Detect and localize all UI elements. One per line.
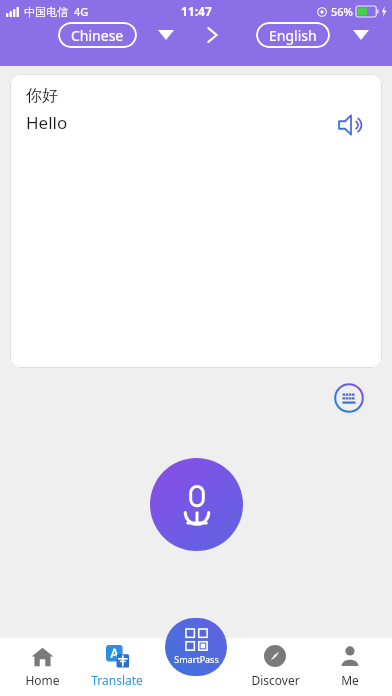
staticText: 4G <box>74 4 89 19</box>
button[interactable]: Swap languages <box>199 22 225 48</box>
button[interactable]: Choose language <box>348 22 374 48</box>
button[interactable]: Home <box>10 638 74 688</box>
staticText: Me <box>341 672 359 688</box>
button[interactable]: Chinese <box>58 22 137 48</box>
button[interactable]: Start voice recording <box>150 458 243 551</box>
button[interactable]: SmartPass <box>165 618 227 676</box>
button[interactable]: Keyboard input <box>332 381 366 415</box>
staticText: Translate <box>91 672 143 688</box>
button[interactable]: Discover <box>243 638 307 688</box>
staticText: 11:47 <box>181 3 212 19</box>
staticText: SmartPass <box>174 653 219 665</box>
staticText: 56% <box>331 4 353 19</box>
staticText: Chinese <box>71 26 124 45</box>
staticText: 你好 <box>26 86 58 106</box>
button[interactable]: English <box>256 22 330 48</box>
button[interactable]: Play pronunciation <box>334 108 368 142</box>
staticText: Home <box>25 672 60 688</box>
staticText: English <box>269 26 317 45</box>
button[interactable]: 你好 <box>10 74 382 368</box>
staticText: 中国电信 <box>24 5 68 19</box>
button[interactable]: Me <box>318 638 382 688</box>
button[interactable]: Choose language <box>153 22 179 48</box>
staticText: Discover <box>251 672 300 688</box>
staticText: Hello <box>26 111 68 134</box>
button[interactable]: Translate <box>85 638 149 688</box>
